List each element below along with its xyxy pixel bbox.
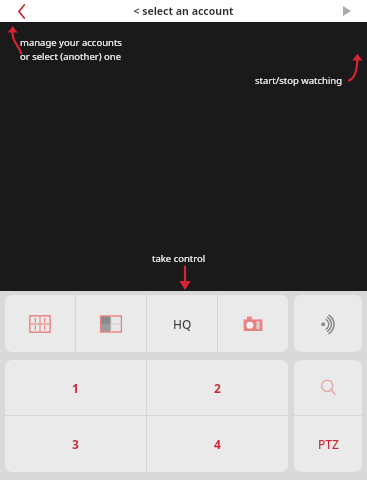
staticText: take control bbox=[152, 252, 206, 265]
staticText: manage your accounts bbox=[20, 36, 122, 49]
staticText: start/stop watching bbox=[255, 74, 343, 87]
button[interactable]: Audio bbox=[294, 295, 362, 352]
button[interactable]: Back bbox=[0, 0, 44, 22]
staticText: 4 bbox=[214, 436, 221, 452]
button[interactable]: Zoom bbox=[294, 360, 362, 415]
staticText: PTZ bbox=[318, 436, 339, 452]
button[interactable]: PTZ bbox=[294, 416, 362, 472]
staticText: 2 bbox=[214, 380, 221, 396]
staticText: < select an account bbox=[133, 4, 234, 18]
staticText: or select (another) one bbox=[20, 50, 121, 63]
button[interactable]: 3 bbox=[5, 416, 146, 472]
button[interactable]: 2 bbox=[147, 360, 288, 415]
staticText: 1 bbox=[72, 380, 79, 396]
staticText: HQ bbox=[173, 316, 192, 332]
button[interactable]: View mode bbox=[76, 295, 146, 352]
button[interactable]: View mode bbox=[5, 295, 75, 352]
staticText: 3 bbox=[72, 436, 79, 452]
button[interactable]: View mode bbox=[218, 295, 288, 352]
button[interactable]: 1 bbox=[5, 360, 146, 415]
button[interactable]: Play bbox=[327, 0, 367, 22]
button[interactable]: 4 bbox=[147, 416, 288, 472]
button[interactable]: HQ bbox=[147, 295, 217, 352]
